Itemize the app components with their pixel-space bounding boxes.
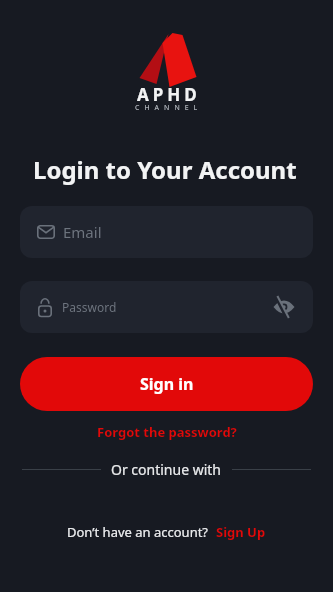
- button[interactable]: Email: [20, 206, 313, 258]
- button[interactable]: Forgot the password?: [97, 423, 237, 441]
- staticText: Or continue with: [111, 460, 222, 479]
- button[interactable]: Password: [20, 281, 313, 333]
- button[interactable]: Sign Up: [216, 523, 266, 541]
- staticText: Email: [63, 222, 102, 242]
- button[interactable]: Sign in: [20, 357, 313, 411]
- staticText: Sign Up: [216, 523, 266, 541]
- staticText: Login to Your Account: [33, 153, 333, 186]
- staticText: Forgot the password?: [97, 423, 237, 441]
- staticText: APHD: [137, 83, 201, 106]
- staticText: Password: [62, 299, 117, 315]
- staticText: Don’t have an account?: [67, 523, 208, 541]
- staticText: CHANNEL: [135, 103, 203, 113]
- staticText: Sign in: [140, 373, 194, 395]
